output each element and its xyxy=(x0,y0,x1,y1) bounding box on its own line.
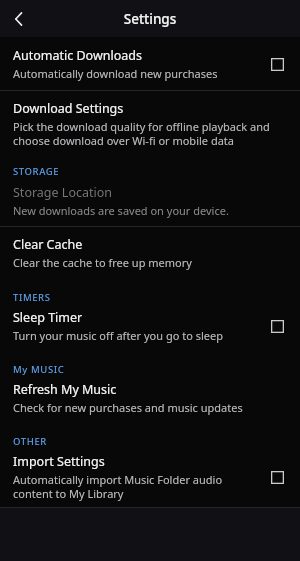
staticText: Settings xyxy=(0,10,300,28)
staticText: Clear the cache to free up memory xyxy=(13,255,192,270)
button[interactable]: Automatic Downloads xyxy=(0,37,300,90)
button[interactable]: Storage Location xyxy=(0,182,300,226)
staticText: STORAGE xyxy=(13,165,300,178)
staticText: New downloads are saved on your device. xyxy=(13,203,229,218)
button[interactable]: Download Settings xyxy=(0,91,300,154)
staticText: Clear Cache xyxy=(13,236,83,253)
staticText: Import Settings xyxy=(13,453,105,470)
button[interactable]: Import Settings xyxy=(0,451,300,507)
staticText: Sleep Timer xyxy=(13,309,83,326)
staticText: OTHER xyxy=(13,435,300,448)
button[interactable]: Refresh My Music xyxy=(0,379,300,423)
staticText: Download Settings xyxy=(13,100,124,117)
staticText: Storage Location xyxy=(13,184,113,201)
button[interactable]: Toggle xyxy=(262,311,292,341)
staticText: Refresh My Music xyxy=(13,381,117,398)
button[interactable]: Sleep Timer xyxy=(0,307,300,351)
button[interactable]: Back xyxy=(0,0,38,37)
staticText: Pick the download quality for offline pl… xyxy=(13,119,288,148)
staticText: Turn your music off after you go to slee… xyxy=(13,328,223,343)
button[interactable]: Clear Cache xyxy=(0,227,300,279)
staticText: Automatic Downloads xyxy=(13,47,142,64)
staticText: Automatically download new purchases xyxy=(13,66,218,81)
staticText: Check for new purchases and music update… xyxy=(13,400,243,415)
staticText: TIMERS xyxy=(13,291,300,304)
staticText: My MUSIC xyxy=(13,363,300,376)
staticText: Automatically import Music Folder audio … xyxy=(13,472,258,501)
button[interactable]: Toggle xyxy=(262,49,292,79)
button[interactable]: Toggle xyxy=(262,462,292,492)
